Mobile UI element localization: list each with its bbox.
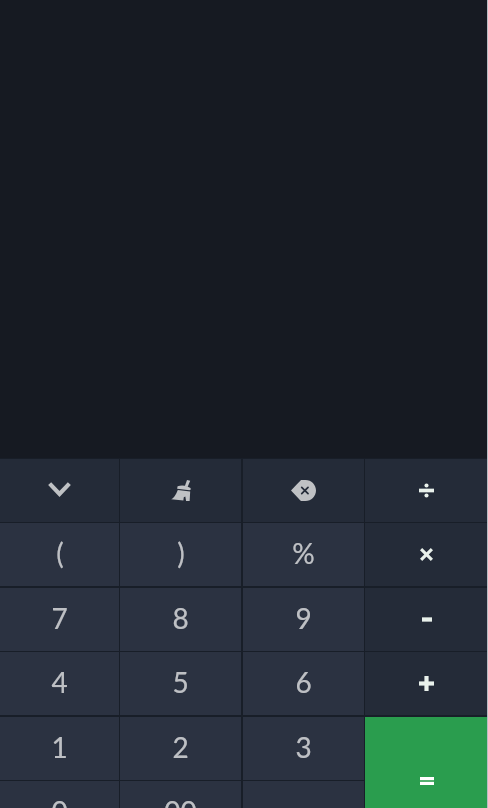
button[interactable]: ) <box>120 523 241 586</box>
button[interactable]: 2 <box>120 717 241 780</box>
staticText: 6 <box>295 665 312 699</box>
button[interactable]: 0 <box>0 781 119 808</box>
staticText: 2 <box>172 730 189 764</box>
button[interactable]: 1 <box>0 717 119 780</box>
button[interactable]: Minus <box>365 588 488 651</box>
button[interactable]: ( <box>0 523 119 586</box>
button[interactable]: Plus <box>365 652 488 715</box>
staticText: 5 <box>172 665 189 699</box>
staticText: ( <box>56 536 64 570</box>
button[interactable]: Divide <box>365 459 488 522</box>
staticText: 1 <box>51 730 68 764</box>
button[interactable]: 5 <box>120 652 241 715</box>
button[interactable]: 7 <box>0 588 119 651</box>
button[interactable]: 6 <box>243 652 364 715</box>
button[interactable]: % <box>243 523 364 586</box>
staticText: 4 <box>51 665 68 699</box>
staticText: 9 <box>295 601 312 635</box>
staticText: 00 <box>164 794 197 808</box>
button[interactable]: 8 <box>120 588 241 651</box>
button[interactable]: 9 <box>243 588 364 651</box>
staticText: % <box>292 536 315 570</box>
button[interactable]: Multiply <box>365 523 488 586</box>
staticText: 8 <box>172 601 189 635</box>
button[interactable]: Clear all <box>120 459 241 522</box>
button[interactable]: Backspace <box>243 459 364 522</box>
staticText: ) <box>177 536 185 570</box>
button[interactable]: Collapse keypad <box>0 459 119 522</box>
staticText: 0 <box>51 794 68 808</box>
staticText: 7 <box>51 601 68 635</box>
button[interactable]: 3 <box>243 717 364 780</box>
button[interactable]: 00 <box>120 781 241 808</box>
button[interactable]: 4 <box>0 652 119 715</box>
staticText: 3 <box>295 730 312 764</box>
button[interactable]: Equals <box>365 717 488 808</box>
